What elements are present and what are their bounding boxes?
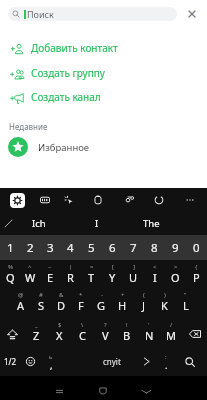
button[interactable]: 1/2 (0, 348, 21, 375)
button[interactable]: _ (25, 320, 48, 348)
button[interactable]: Back (134, 379, 158, 400)
button[interactable]: Создать группу (0, 61, 207, 85)
button[interactable]: / (160, 320, 182, 348)
button[interactable]: Translate (122, 192, 138, 208)
button[interactable]: 2 (20, 235, 40, 260)
button[interactable]: Emoji (19, 348, 41, 375)
button[interactable]: ( (133, 290, 154, 318)
staticText: * (79, 291, 83, 299)
button[interactable]: 6 (102, 235, 123, 260)
button[interactable]: More options (182, 192, 198, 208)
staticText: The (143, 217, 160, 230)
button[interactable]: Keyboard settings (10, 193, 25, 208)
button[interactable]: Recent apps (47, 379, 71, 400)
staticText: ( (143, 291, 145, 299)
button[interactable]: 3 (40, 235, 60, 260)
staticText: 1 (7, 240, 14, 256)
button[interactable]: ? (94, 320, 116, 348)
button[interactable]: Space (64, 348, 160, 375)
button[interactable]: ] (123, 262, 144, 290)
staticText: L (183, 298, 189, 313)
staticText: W (25, 270, 36, 285)
staticText: U (129, 270, 138, 285)
button[interactable]: * (71, 290, 91, 318)
staticText: M (166, 328, 176, 343)
button[interactable]: = (81, 262, 102, 290)
button[interactable]: @ (11, 290, 31, 318)
staticText: cnyit (103, 356, 121, 367)
staticText: 4 (67, 240, 74, 256)
staticText: ь (49, 353, 53, 361)
staticText: P (193, 270, 200, 285)
button[interactable]: Поиск (8, 7, 177, 21)
button[interactable]: < (144, 262, 165, 290)
staticText: V (102, 328, 109, 343)
button[interactable]: & (51, 290, 71, 318)
staticText: Недавние (9, 121, 48, 132)
staticText: ' (148, 321, 150, 329)
button[interactable]: ^ (20, 262, 40, 290)
button[interactable]: - (91, 290, 112, 318)
staticText: $ (58, 321, 62, 329)
staticText: = (90, 263, 94, 271)
button[interactable]: Theme (151, 192, 167, 208)
button[interactable]: | (60, 262, 81, 290)
staticText: Ich (32, 217, 46, 230)
button[interactable]: I (72, 215, 122, 231)
button[interactable]: : (155, 348, 177, 375)
button[interactable]: " (175, 290, 196, 318)
button[interactable]: > (165, 262, 186, 290)
staticText: > (174, 263, 178, 271)
button[interactable]: \ (71, 320, 94, 348)
button[interactable]: GIF (61, 192, 77, 208)
button[interactable]: ) (154, 290, 175, 318)
button[interactable]: 1 (0, 235, 20, 260)
staticText: D (57, 298, 66, 313)
staticText: 3 (47, 240, 54, 256)
button[interactable]: Stickers (37, 192, 53, 208)
staticText: < (153, 263, 157, 271)
button[interactable]: 4 (60, 235, 81, 260)
button[interactable]: Close (182, 4, 202, 24)
staticText: 9 (172, 240, 179, 256)
button[interactable]: ь (40, 348, 62, 375)
staticText: 0 (193, 240, 200, 256)
button[interactable]: 9 (165, 235, 186, 260)
button[interactable]: Ich (14, 215, 64, 231)
button[interactable]: Search (178, 348, 202, 375)
button[interactable]: $ (48, 320, 71, 348)
staticText: Поиск (27, 8, 54, 20)
button[interactable]: 0 (186, 235, 207, 260)
button[interactable]: Избранное (0, 136, 207, 158)
staticText: 7 (130, 240, 137, 256)
button[interactable]: 7 (123, 235, 144, 260)
button[interactable]: % (0, 262, 20, 290)
staticText: . (165, 359, 168, 371)
button[interactable]: 5 (81, 235, 102, 260)
button[interactable]: Shift (0, 320, 25, 348)
staticText: % (8, 263, 13, 271)
staticText: [ (112, 263, 114, 271)
button[interactable]: Добавить контакт (0, 36, 207, 60)
staticText: Создать канал (31, 90, 101, 104)
button[interactable]: ~ (40, 262, 60, 290)
staticText: ) (164, 291, 166, 299)
button[interactable]: ' (138, 320, 160, 348)
staticText: 8 (151, 240, 158, 256)
button[interactable]: # (31, 290, 51, 318)
staticText: 6 (109, 240, 116, 256)
button[interactable]: The (126, 215, 176, 231)
button[interactable]: Next (135, 348, 157, 375)
staticText: Q (6, 270, 15, 285)
button[interactable]: Home (91, 379, 115, 400)
button[interactable]: Backspace (182, 320, 207, 348)
button[interactable]: [ (102, 262, 123, 290)
button[interactable]: ! (116, 320, 138, 348)
button[interactable]: 8 (144, 235, 165, 260)
button[interactable]: Clipboard (90, 192, 106, 208)
button[interactable]: { (186, 262, 207, 290)
staticText: O (171, 270, 180, 285)
button[interactable]: + (112, 290, 133, 318)
button[interactable]: Создать канал (0, 85, 207, 109)
staticText: ! (126, 321, 128, 329)
